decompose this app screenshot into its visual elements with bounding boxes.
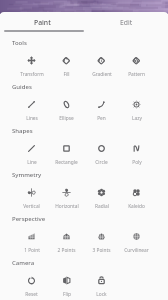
staticText: Line bbox=[27, 159, 37, 166]
staticText: Shapes bbox=[12, 127, 33, 135]
other: Lines bbox=[21, 94, 42, 115]
other: Poly bbox=[126, 138, 147, 159]
button[interactable]: Lines bbox=[14, 94, 49, 122]
other: Lazy bbox=[126, 94, 147, 115]
staticText: Reset bbox=[25, 291, 38, 298]
button[interactable]: Pattern bbox=[119, 50, 154, 78]
button[interactable]: Kaleido bbox=[119, 182, 154, 210]
staticText: Vertical bbox=[23, 203, 40, 210]
button[interactable]: Lazy bbox=[119, 94, 154, 122]
other: Pattern bbox=[126, 50, 147, 71]
button[interactable]: Gradient bbox=[84, 50, 119, 78]
other: Kaleido bbox=[126, 182, 147, 203]
other: Pen bbox=[91, 94, 112, 115]
other: Vertical bbox=[21, 182, 42, 203]
button[interactable]: Curvilinear bbox=[119, 226, 154, 254]
button[interactable]: Line bbox=[14, 138, 49, 166]
button[interactable]: Rectangle bbox=[49, 138, 84, 166]
button[interactable]: Circle bbox=[84, 138, 119, 166]
button[interactable]: 3 Points bbox=[84, 226, 119, 254]
other: Ellipse bbox=[56, 94, 77, 115]
other: Lock bbox=[91, 270, 112, 291]
button[interactable]: Transform bbox=[14, 50, 49, 78]
staticText: Circle bbox=[95, 159, 108, 166]
staticText: 3 Points bbox=[92, 247, 111, 254]
staticText: Transform bbox=[20, 71, 44, 78]
staticText: Edit bbox=[120, 18, 133, 27]
staticText: Paint bbox=[34, 18, 51, 27]
staticText: Horizontal bbox=[55, 203, 79, 210]
staticText: Ellipse bbox=[59, 115, 74, 122]
other: Rectangle bbox=[56, 138, 77, 159]
staticText: Pen bbox=[97, 115, 106, 122]
button[interactable]: 2 Points bbox=[49, 226, 84, 254]
staticText: Kaleido bbox=[128, 203, 145, 210]
other: Curvilinear bbox=[126, 226, 147, 247]
button[interactable]: Pen bbox=[84, 94, 119, 122]
button[interactable]: Poly bbox=[119, 138, 154, 166]
staticText: Pattern bbox=[128, 71, 145, 78]
staticText: Lock bbox=[96, 291, 107, 298]
other: Fill bbox=[56, 50, 77, 71]
button[interactable]: 1 Point bbox=[14, 226, 49, 254]
staticText: Camera bbox=[12, 259, 35, 267]
button[interactable]: Reset bbox=[14, 270, 49, 298]
button[interactable]: Fill bbox=[49, 50, 84, 78]
staticText: Rectangle bbox=[55, 159, 78, 166]
staticText: Perspective bbox=[12, 215, 46, 223]
other: Flip bbox=[56, 270, 77, 291]
other: 1 Point bbox=[21, 226, 42, 247]
other: Gradient bbox=[91, 50, 112, 71]
staticText: Flip bbox=[63, 291, 71, 298]
staticText: Fill bbox=[63, 71, 70, 78]
other: Transform bbox=[21, 50, 42, 71]
staticText: Guides bbox=[12, 83, 32, 91]
button[interactable]: Flip bbox=[49, 270, 84, 298]
other: 2 Points bbox=[56, 226, 77, 247]
staticText: Lazy bbox=[132, 115, 142, 122]
other: Circle bbox=[91, 138, 112, 159]
staticText: Lines bbox=[26, 115, 38, 122]
staticText: Symmetry bbox=[12, 171, 42, 179]
staticText: Gradient bbox=[92, 71, 112, 78]
button[interactable]: Vertical bbox=[14, 182, 49, 210]
button[interactable]: Paint bbox=[0, 12, 84, 33]
other: Line bbox=[21, 138, 42, 159]
other: Radial bbox=[91, 182, 112, 203]
staticText: 2 Points bbox=[57, 247, 76, 254]
button[interactable]: Edit bbox=[84, 12, 168, 33]
other: Reset bbox=[21, 270, 42, 291]
other: Horizontal bbox=[56, 182, 77, 203]
button[interactable]: Horizontal bbox=[49, 182, 84, 210]
staticText: Curvilinear bbox=[124, 247, 149, 254]
button[interactable]: Radial bbox=[84, 182, 119, 210]
staticText: Radial bbox=[95, 203, 109, 210]
staticText: Tools bbox=[12, 39, 27, 47]
button[interactable]: Ellipse bbox=[49, 94, 84, 122]
other: 3 Points bbox=[91, 226, 112, 247]
staticText: 1 Point bbox=[24, 247, 40, 254]
staticText: Poly bbox=[132, 159, 142, 166]
button[interactable]: Lock bbox=[84, 270, 119, 298]
